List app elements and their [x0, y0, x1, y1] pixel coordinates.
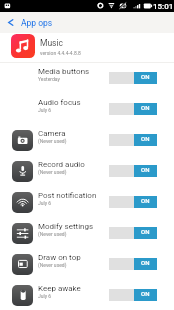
button[interactable]: Music: [0, 33, 174, 62]
button[interactable]: Post notification: [0, 187, 174, 218]
staticText: App ops: [21, 18, 53, 28]
button[interactable]: Toggle permission, on: [109, 134, 157, 146]
staticText: ON: [141, 73, 150, 80]
staticText: (Never used): [38, 138, 67, 144]
button[interactable]: Back to App ops: [0, 12, 174, 33]
staticText: Yesterday: [38, 76, 60, 82]
button[interactable]: Toggle permission, on: [109, 165, 157, 177]
staticText: 15:01: [153, 2, 174, 11]
button[interactable]: Toggle permission, on: [109, 103, 157, 115]
button[interactable]: Record audio: [0, 156, 174, 187]
staticText: ON: [141, 290, 150, 297]
staticText: version 4.4.4-4.8.8: [40, 50, 81, 56]
staticText: (Never used): [38, 262, 67, 268]
staticText: ON: [141, 228, 150, 235]
staticText: ON: [141, 104, 150, 111]
staticText: ON: [141, 197, 150, 204]
staticText: Music: [40, 38, 64, 48]
staticText: ON: [141, 259, 150, 266]
button[interactable]: Draw on top: [0, 249, 174, 280]
staticText: July 6: [38, 293, 52, 299]
staticText: July 6: [38, 200, 52, 206]
button[interactable]: Toggle permission, on: [109, 258, 157, 270]
staticText: July 6: [38, 107, 52, 113]
staticText: (Never used): [38, 231, 67, 237]
staticText: Draw on top: [38, 253, 81, 262]
staticText: Media buttons: [38, 67, 90, 76]
button[interactable]: Toggle permission, on: [109, 227, 157, 239]
staticText: Post notification: [38, 191, 97, 200]
button[interactable]: Toggle permission, on: [109, 196, 157, 208]
button[interactable]: Modify settings: [0, 218, 174, 249]
staticText: Modify settings: [38, 222, 94, 231]
staticText: Camera: [38, 129, 66, 138]
button[interactable]: Camera: [0, 125, 174, 156]
button[interactable]: Media buttons: [0, 63, 174, 94]
staticText: ON: [141, 135, 150, 142]
staticText: Record audio: [38, 160, 85, 169]
staticText: Audio focus: [38, 98, 81, 107]
staticText: ON: [141, 166, 150, 173]
button[interactable]: Toggle permission, on: [109, 289, 157, 301]
staticText: Keep awake: [38, 284, 81, 293]
button[interactable]: Toggle permission, on: [109, 72, 157, 84]
button[interactable]: Keep awake: [0, 280, 174, 310]
staticText: (Never used): [38, 169, 67, 175]
button[interactable]: Audio focus: [0, 94, 174, 125]
